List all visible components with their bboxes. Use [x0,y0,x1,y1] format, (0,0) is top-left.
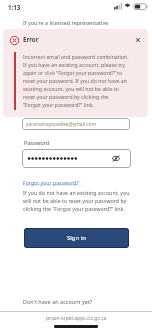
staticText: prson-srpel.apps.cic.gc.ca [46,315,107,322]
button[interactable]: prson-srpel.apps.cic.gc.ca [0,312,152,324]
staticText: “Forgot your password?” link. [23,101,94,108]
staticText: again or click “Forgot your password?” t… [23,69,123,76]
staticText: Error [23,35,39,43]
button[interactable]: Forgot your password? [23,177,81,187]
staticText: Forgot your password? [23,179,79,186]
staticText: reset your password by clicking the [23,93,109,100]
button[interactable] [131,32,145,46]
staticText: reset your password. If you do not have … [23,77,127,84]
staticText: clicking the “Forgot your password?” lin… [23,205,125,212]
staticText: yaranomayoowilee@ymail.com [26,121,96,128]
button[interactable] [22,149,131,168]
button[interactable]: Sign in [24,228,129,248]
staticText: will not be able to reset your password … [23,197,127,204]
staticText: Sign in [67,234,87,242]
button[interactable]: yaranomayoowilee@ymail.com [22,118,130,130]
staticText: Password [24,139,50,147]
staticText: If you have an existing account, please … [23,61,125,68]
staticText: Incorrect email and password combination… [23,53,129,60]
staticText: existing account, you will not be able t… [23,85,119,92]
staticText: If you do not have an existing account, … [23,189,130,196]
staticText: If you're a licensed representative [23,19,109,26]
staticText: 1:13 [8,3,21,11]
staticText: Don't have an account yet? [23,298,93,305]
